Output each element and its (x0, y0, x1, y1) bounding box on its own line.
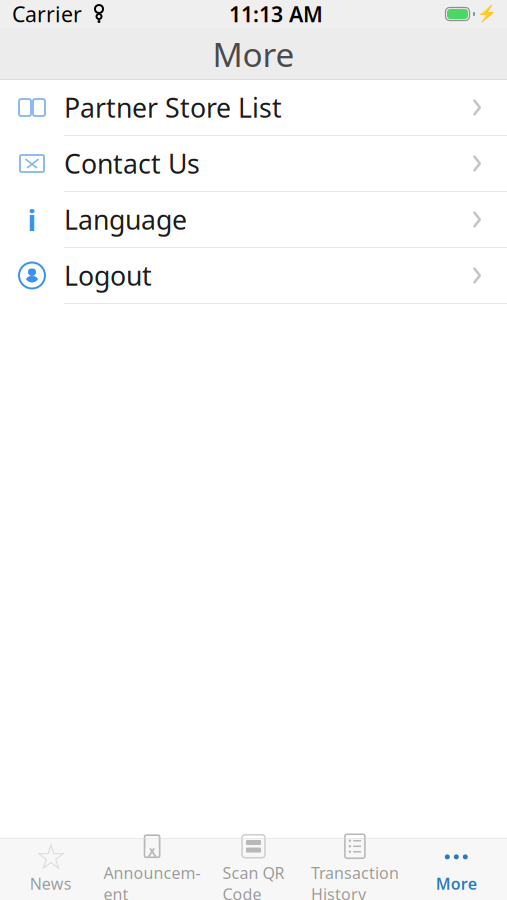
staticText: News (30, 873, 72, 894)
staticText: Contact Us (64, 146, 200, 181)
staticText: Language (64, 202, 187, 237)
button[interactable]: Partner Store List (0, 80, 507, 135)
staticText: Logout (64, 258, 152, 293)
button[interactable]: i (0, 192, 507, 247)
staticText: ☆ (35, 836, 67, 877)
button[interactable]: Transaction History (304, 838, 406, 900)
button[interactable]: Logout (0, 248, 507, 303)
button[interactable]: Scan QR Code (203, 838, 304, 900)
staticText: ⚡ (477, 5, 497, 23)
staticText: More (212, 32, 294, 76)
staticText: i (27, 200, 36, 239)
button[interactable]: Announcement (101, 838, 203, 900)
staticText: Carrier (12, 0, 82, 28)
button[interactable]: More (406, 838, 507, 900)
staticText: More (436, 873, 477, 894)
button[interactable]: ☆ (0, 838, 101, 900)
staticText: Announcement (104, 862, 201, 900)
staticText: 11:13 AM (229, 0, 323, 28)
staticText: Transaction History (311, 862, 399, 900)
staticText: Partner Store List (64, 90, 282, 125)
staticText: Scan QR Code (222, 862, 284, 900)
button[interactable]: Contact Us (0, 136, 507, 191)
